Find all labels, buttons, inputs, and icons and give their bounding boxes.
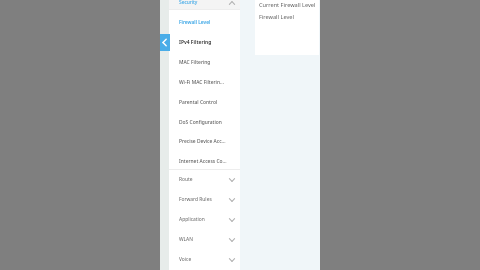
button[interactable]: Internet Access Co...: [169, 151, 240, 171]
staticText: Wi-Fi MAC Filterin...: [179, 79, 224, 86]
staticText: Firewall Level: [179, 19, 211, 26]
button[interactable]: MAC Filtering: [169, 52, 240, 72]
button[interactable]: IPv4 Filtering: [169, 32, 240, 52]
button[interactable]: Firewall Level: [169, 12, 240, 32]
staticText: MAC Filtering: [179, 59, 211, 66]
staticText: Precise Device Acc...: [179, 138, 226, 145]
staticText: WLAN: [179, 236, 193, 243]
staticText: Forward Rules: [179, 196, 212, 203]
staticText: Parental Control: [179, 99, 218, 106]
button[interactable]: DoS Configuration: [169, 112, 240, 132]
button[interactable]: Wi-Fi MAC Filterin...: [169, 72, 240, 92]
staticText: Route: [179, 176, 193, 183]
button[interactable]: Collapse sidebar: [160, 34, 170, 51]
button[interactable]: Precise Device Acc...: [169, 131, 240, 151]
staticText: IPv4 Filtering: [179, 39, 212, 46]
button[interactable]: Voice: [169, 249, 240, 269]
staticText: Firewall Level: [259, 13, 294, 21]
button[interactable]: Parental Control: [169, 92, 240, 112]
button[interactable]: Route: [169, 169, 240, 189]
button[interactable]: Security: [169, 0, 240, 9]
staticText: DoS Configuration: [179, 119, 222, 126]
staticText: Current Firewall Level: [259, 1, 316, 9]
button[interactable]: Application: [169, 209, 240, 229]
button[interactable]: Forward Rules: [169, 189, 240, 209]
staticText: Application: [179, 216, 205, 223]
staticText: Internet Access Co...: [179, 158, 227, 165]
button[interactable]: WLAN: [169, 229, 240, 249]
staticText: Security: [179, 0, 198, 6]
staticText: Voice: [179, 256, 192, 263]
